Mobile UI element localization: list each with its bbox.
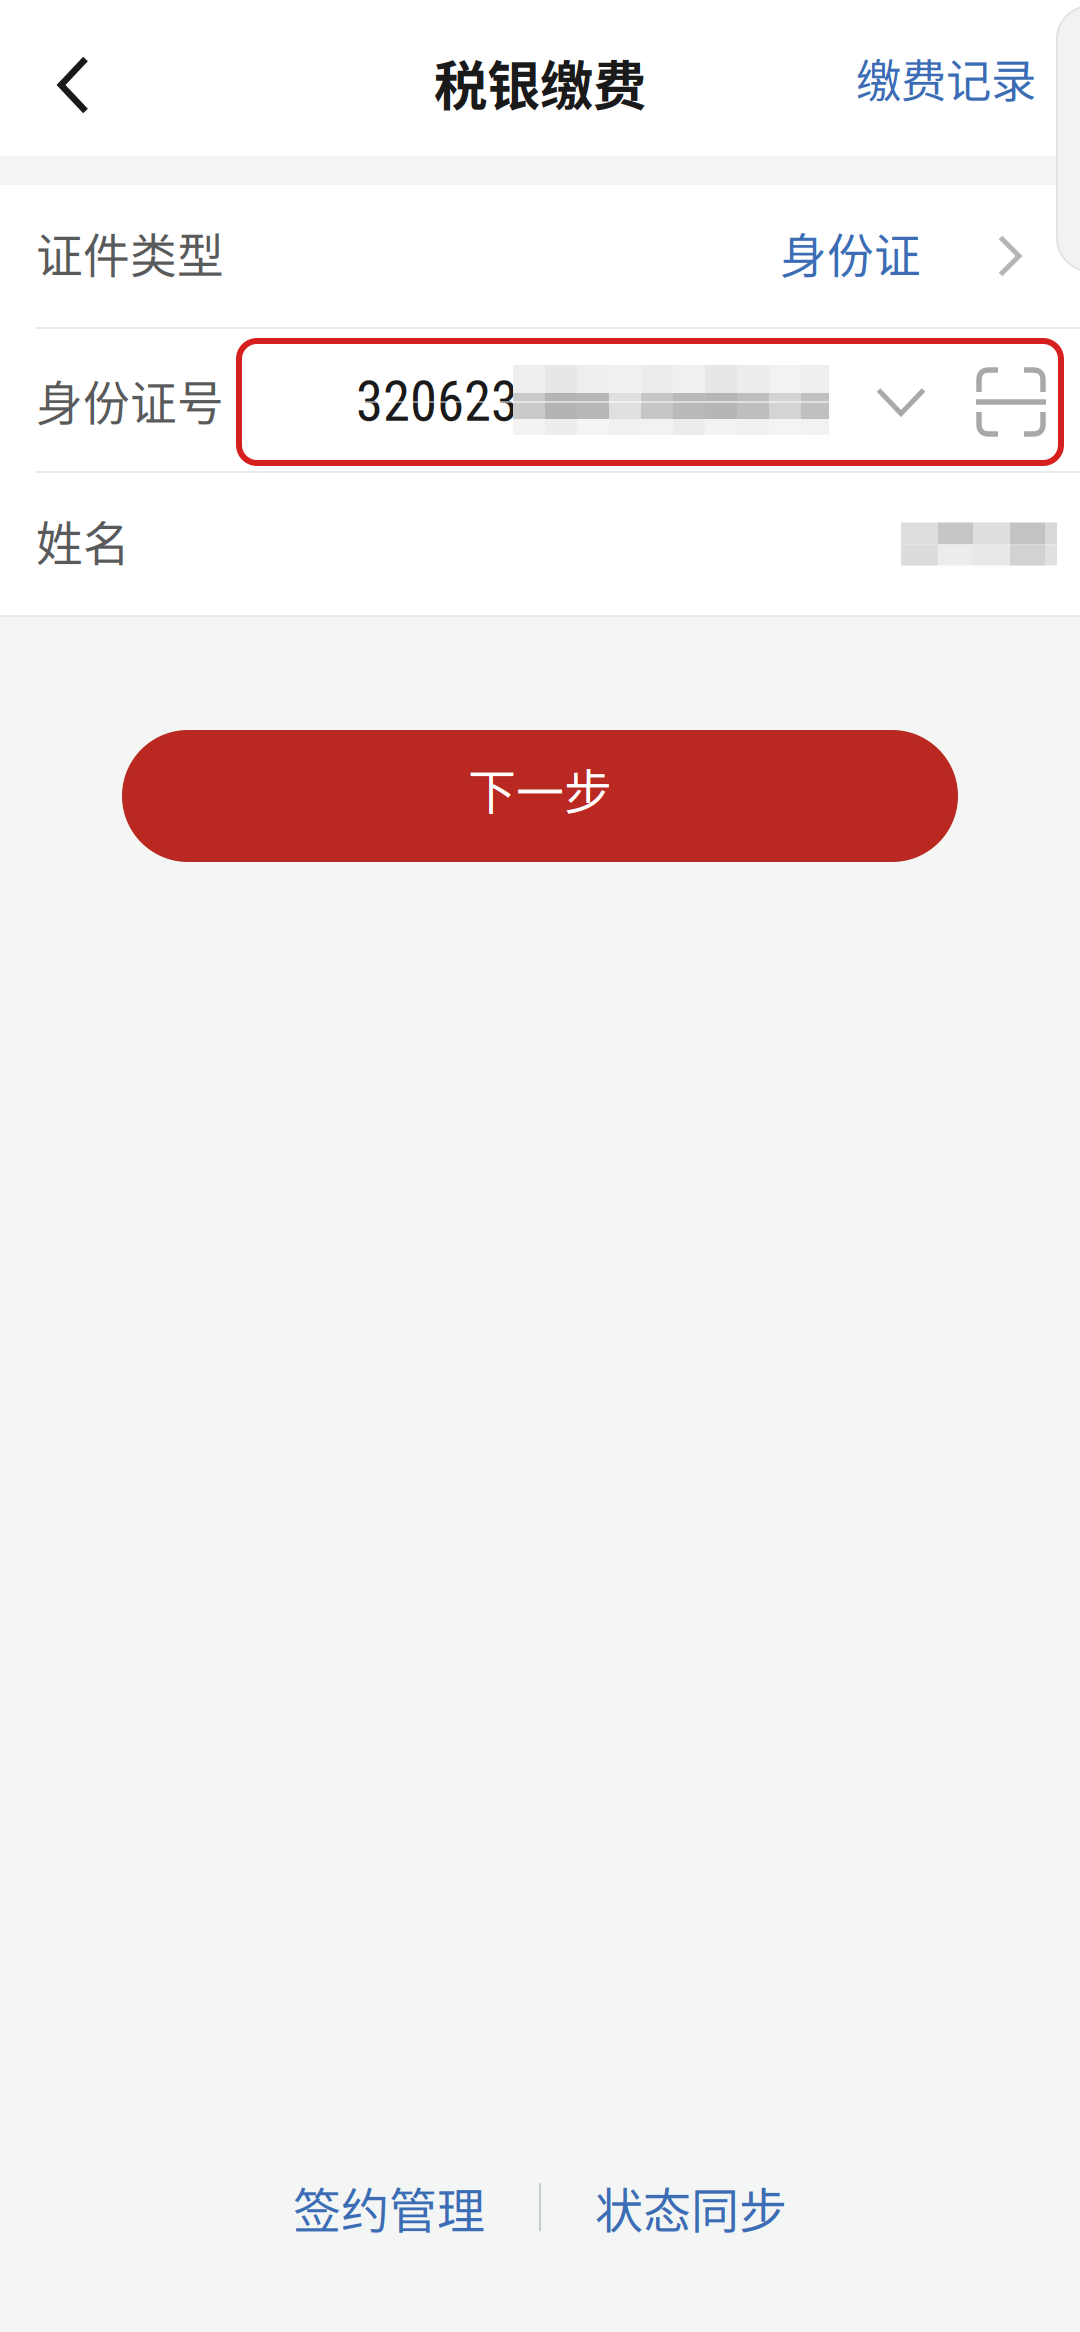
staticText: 下一步 (468, 754, 612, 823)
button[interactable]: ID number field (239, 337, 1080, 463)
staticText: 证件类型 (36, 219, 224, 286)
staticText: 缴费记录 (856, 45, 1036, 111)
staticText: 身份证 (780, 219, 921, 286)
button[interactable]: 缴费记录 (856, 23, 1080, 133)
button[interactable]: Choose saved ID (852, 357, 950, 447)
button[interactable]: 下一步 (122, 730, 958, 862)
staticText: 姓名 (36, 507, 130, 574)
staticText: 320623 (356, 370, 518, 434)
button[interactable]: 签约管理 (293, 2172, 485, 2242)
staticText: 身份证号 (36, 366, 224, 434)
button[interactable]: Back (0, 6, 131, 150)
staticText: 状态同步 (595, 2172, 787, 2242)
button[interactable]: 状态同步 (595, 2172, 787, 2242)
staticText: 签约管理 (293, 2172, 485, 2242)
button[interactable]: 姓名 (0, 473, 1080, 615)
button[interactable]: 证件类型 (0, 185, 1080, 327)
button[interactable]: Scan ID card (966, 357, 1056, 447)
staticText: 税银缴费 (434, 44, 646, 121)
